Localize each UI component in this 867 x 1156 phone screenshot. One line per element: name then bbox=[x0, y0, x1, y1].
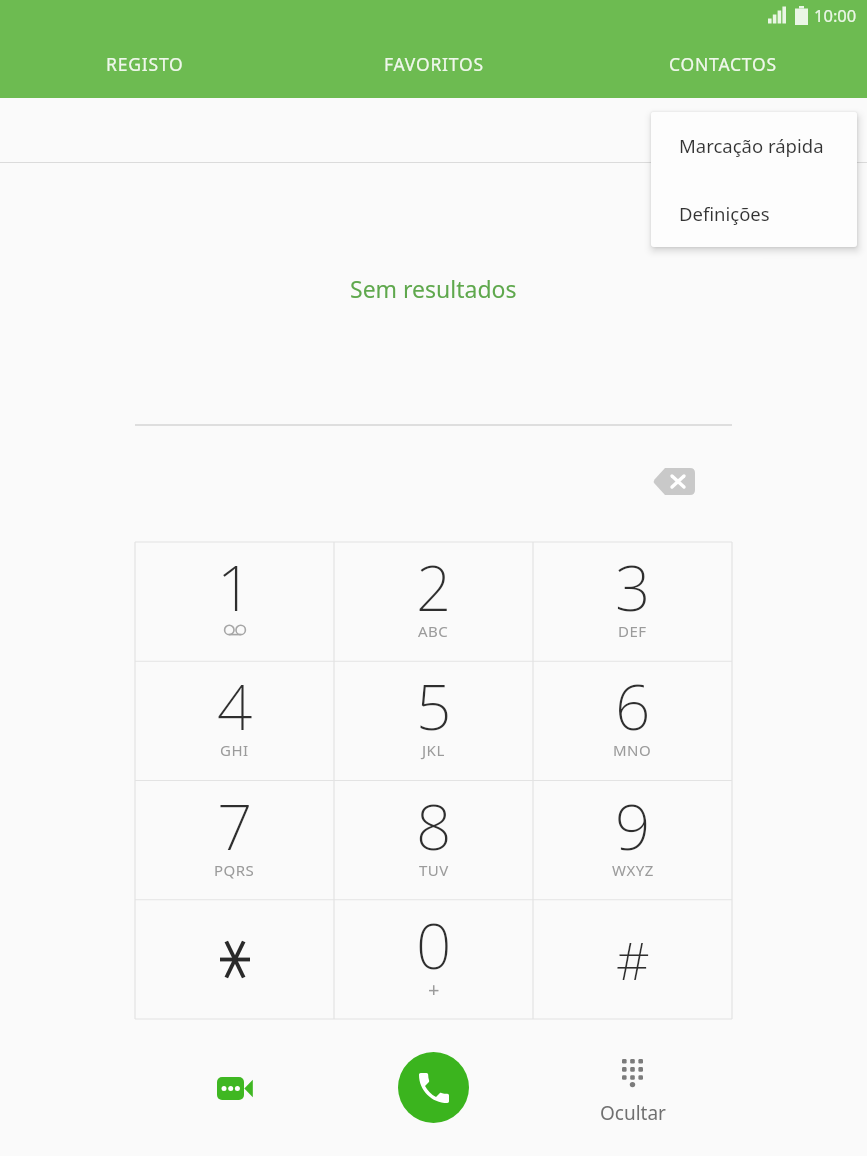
staticText: 1 bbox=[217, 545, 253, 629]
button[interactable]: 4 bbox=[135, 661, 334, 780]
button[interactable]: 8 bbox=[334, 781, 533, 900]
staticText: 0 bbox=[416, 903, 452, 987]
button[interactable] bbox=[398, 1052, 469, 1123]
button[interactable]: 6 bbox=[533, 661, 732, 780]
button[interactable]: Definições bbox=[651, 179, 857, 247]
staticText: 6 bbox=[615, 664, 651, 748]
staticText: 5 bbox=[416, 664, 452, 748]
staticText: MNO bbox=[613, 740, 652, 760]
staticText: CONTACTOS bbox=[669, 52, 777, 76]
staticText: ABC bbox=[418, 621, 449, 641]
staticText: DEF bbox=[618, 621, 647, 641]
staticText: Sem resultados bbox=[350, 273, 517, 304]
staticText: GHI bbox=[220, 740, 249, 760]
staticText: 10:00 bbox=[814, 4, 857, 26]
staticText: 4 bbox=[217, 664, 253, 748]
staticText: 9 bbox=[615, 784, 651, 868]
button[interactable] bbox=[205, 1058, 265, 1118]
staticText: 7 bbox=[217, 784, 253, 868]
button[interactable]: FAVORITOS bbox=[289, 30, 578, 98]
button[interactable]: 7 bbox=[135, 781, 334, 900]
staticText: REGISTO bbox=[106, 52, 184, 76]
button[interactable]: CONTACTOS bbox=[578, 30, 867, 98]
button[interactable]: REGISTO bbox=[0, 30, 289, 98]
button[interactable] bbox=[135, 900, 334, 1019]
button[interactable]: 2 bbox=[334, 542, 533, 661]
button[interactable] bbox=[648, 463, 700, 500]
button[interactable]: Marcação rápida bbox=[651, 112, 857, 179]
staticText: TUV bbox=[419, 860, 449, 880]
staticText: 2 bbox=[416, 545, 452, 629]
staticText: Ocultar bbox=[600, 1100, 666, 1126]
staticText: Marcação rápida bbox=[679, 133, 824, 158]
button[interactable]: 3 bbox=[533, 542, 732, 661]
staticText: PQRS bbox=[214, 860, 255, 880]
button[interactable]: Ocultar bbox=[595, 1052, 670, 1127]
button[interactable]: # bbox=[533, 900, 732, 1019]
staticText: FAVORITOS bbox=[384, 52, 484, 76]
staticText: JKL bbox=[422, 740, 445, 760]
button[interactable]: 1 bbox=[135, 542, 334, 661]
staticText: + bbox=[428, 976, 440, 1003]
button[interactable]: 0 bbox=[334, 900, 533, 1019]
button[interactable]: 5 bbox=[334, 661, 533, 780]
staticText: 3 bbox=[615, 545, 651, 629]
staticText: # bbox=[616, 924, 650, 995]
button[interactable]: 9 bbox=[533, 781, 732, 900]
staticText: 8 bbox=[416, 784, 452, 868]
staticText: Definições bbox=[679, 201, 770, 226]
staticText: WXYZ bbox=[612, 860, 654, 880]
